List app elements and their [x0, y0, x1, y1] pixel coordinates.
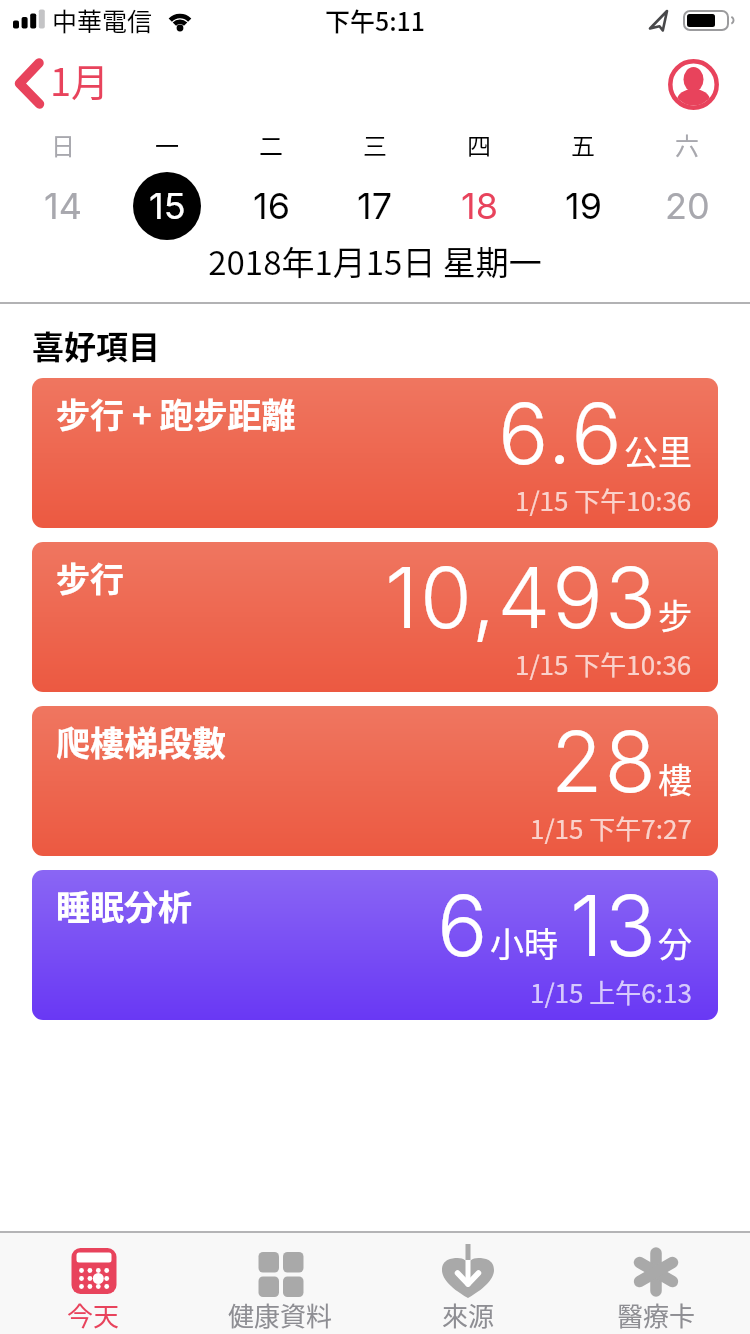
staticText: 20	[665, 184, 710, 228]
staticText: 16	[253, 184, 290, 228]
button[interactable]: 步行 + 跑步距離	[32, 378, 718, 528]
button[interactable]: 17	[323, 172, 427, 240]
button[interactable]: 16	[219, 172, 323, 240]
staticText: 17	[357, 184, 393, 228]
button[interactable]: 睡眠分析	[32, 870, 718, 1020]
button[interactable]: 醫療卡	[562, 1233, 750, 1334]
staticText: 睡眠分析	[56, 881, 192, 930]
button[interactable]: 15	[115, 172, 219, 240]
staticText: 喜好項目	[32, 322, 161, 368]
staticText: 小時	[490, 918, 558, 967]
staticText: 1/15 上午6:13	[530, 973, 692, 1011]
button[interactable]: 今天	[0, 1233, 187, 1334]
staticText: 6.6	[498, 383, 624, 485]
button[interactable]: 來源	[374, 1233, 562, 1334]
staticText: 來源	[442, 1296, 495, 1334]
button[interactable]: 14	[11, 172, 115, 240]
staticText: 10,493	[385, 547, 658, 649]
staticText: 今天	[67, 1296, 120, 1334]
staticText: 1/15 下午10:36	[515, 481, 692, 519]
staticText: 15	[149, 184, 186, 228]
staticText: 28	[551, 711, 658, 813]
staticText: 三	[363, 127, 387, 162]
staticText: 日	[51, 127, 75, 162]
staticText: 一	[155, 127, 179, 162]
button[interactable]: 步行	[32, 542, 718, 692]
button[interactable]: 20	[635, 172, 739, 240]
staticText: 分	[658, 918, 692, 967]
staticText: 1/15 下午7:27	[530, 809, 692, 847]
button[interactable]: 健康資料	[187, 1233, 374, 1334]
staticText: 13	[570, 875, 658, 977]
staticText: 步行 + 跑步距離	[56, 389, 296, 438]
staticText: 樓	[658, 754, 692, 803]
staticText: 步行	[56, 553, 124, 602]
button[interactable]: 爬樓梯段數	[32, 706, 718, 856]
staticText: 健康資料	[228, 1296, 333, 1334]
staticText: 2018年1月15日 星期一	[0, 237, 750, 285]
staticText: 二	[259, 127, 283, 162]
staticText: 下午5:11	[0, 2, 750, 38]
staticText: 六	[675, 127, 699, 162]
staticText: 中華電信	[52, 2, 153, 38]
staticText: 19	[565, 184, 602, 228]
staticText: 18	[461, 184, 498, 228]
staticText: 1/15 下午10:36	[515, 645, 692, 683]
staticText: 6	[437, 875, 490, 977]
staticText: 公里	[624, 426, 692, 475]
button[interactable]	[668, 59, 719, 110]
staticText: 四	[467, 127, 491, 162]
button[interactable]: 19	[531, 172, 635, 240]
staticText: 14	[44, 184, 82, 228]
button[interactable]: 18	[427, 172, 531, 240]
staticText: 1月	[50, 52, 110, 107]
staticText: 醫療卡	[617, 1296, 696, 1334]
staticText: 爬樓梯段數	[56, 717, 226, 766]
button[interactable]: 1月	[12, 52, 132, 112]
staticText: 五	[571, 127, 595, 162]
staticText: 步	[658, 590, 692, 639]
